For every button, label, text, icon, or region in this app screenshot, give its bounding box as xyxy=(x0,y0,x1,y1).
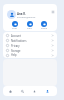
staticText: Notifications xyxy=(11,39,27,43)
staticText: Ana R. xyxy=(17,12,26,16)
staticText: Storage xyxy=(11,49,21,53)
staticText: Account xyxy=(11,34,21,38)
button[interactable]: Notifications xyxy=(3,38,57,43)
button[interactable]: Share xyxy=(37,21,50,30)
button[interactable]: Account xyxy=(3,33,57,38)
staticText: Chat xyxy=(12,27,17,30)
button[interactable]: Chat xyxy=(8,21,21,30)
button[interactable]: Storage xyxy=(3,48,57,53)
staticText: ana.reyes@mail.co xyxy=(17,16,36,19)
staticText: Calls xyxy=(27,27,32,30)
button[interactable]: Calls xyxy=(23,21,36,30)
button[interactable]: Notifications xyxy=(28,86,40,96)
button[interactable]: Profile xyxy=(41,86,53,96)
button[interactable]: Home xyxy=(4,86,16,96)
staticText: Help xyxy=(11,53,17,57)
button[interactable]: Search xyxy=(16,86,28,96)
staticText: Share xyxy=(41,27,47,30)
button[interactable]: Privacy xyxy=(3,43,57,48)
button[interactable]: Settings xyxy=(49,8,56,15)
staticText: Privacy xyxy=(11,44,20,48)
button[interactable]: Help xyxy=(3,53,57,57)
